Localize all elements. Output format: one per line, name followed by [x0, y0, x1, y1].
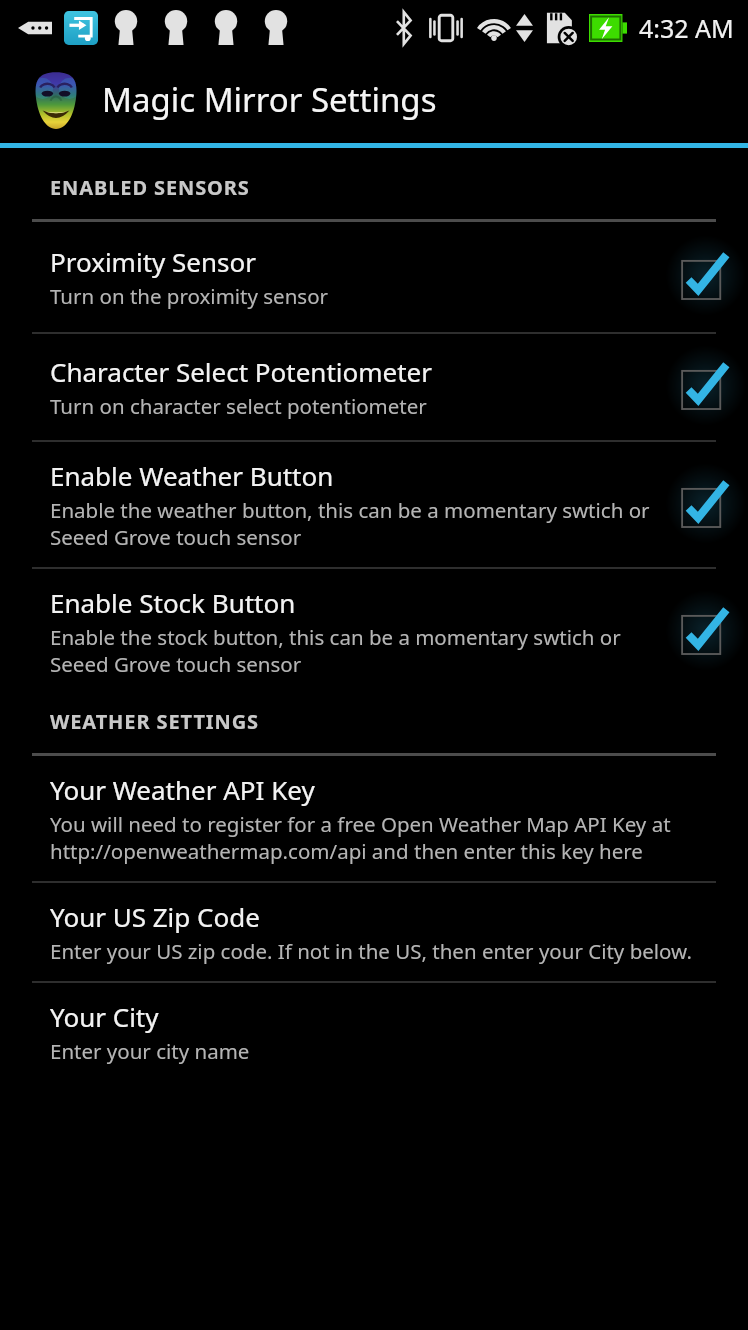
staticText: Your US Zip Code: [50, 899, 260, 934]
staticText: Turn on character select potentiometer: [50, 392, 427, 420]
staticText: Turn on the proximity sensor: [50, 282, 329, 310]
button[interactable]: Enable Stock Button: [0, 569, 748, 692]
staticText: Enable Weather Button: [50, 458, 334, 493]
button[interactable]: Proximity Sensor: [0, 222, 748, 332]
staticText: Your City: [50, 999, 159, 1034]
staticText: Enable Stock Button: [50, 585, 296, 620]
staticText: You will need to register for a free Ope…: [50, 810, 728, 865]
button[interactable]: Enable Weather Button: [0, 442, 748, 567]
staticText: 4:32 AM: [639, 11, 734, 45]
staticText: Your Weather API Key: [50, 772, 315, 807]
staticText: Enable the stock button, this can be a m…: [50, 623, 660, 678]
button[interactable]: Toggle setting: [666, 474, 728, 536]
button[interactable]: Your US Zip Code: [0, 883, 748, 981]
button[interactable]: Your City: [0, 983, 748, 1081]
button[interactable]: Your Weather API Key: [0, 756, 748, 881]
staticText: Character Select Potentiometer: [50, 354, 433, 389]
staticText: WEATHER SETTINGS: [50, 708, 259, 735]
button[interactable]: Toggle setting: [666, 356, 728, 418]
staticText: Proximity Sensor: [50, 244, 256, 279]
staticText: Enter your US zip code. If not in the US…: [50, 937, 692, 965]
staticText: Magic Mirror Settings: [102, 77, 437, 122]
staticText: Enable the weather button, this can be a…: [50, 496, 660, 551]
button[interactable]: Toggle setting: [666, 601, 728, 663]
button[interactable]: Character Select Potentiometer: [0, 334, 748, 440]
staticText: Enter your city name: [50, 1037, 250, 1065]
button[interactable]: Toggle setting: [666, 246, 728, 308]
button[interactable]: Magic Mirror Settings: [0, 56, 748, 143]
staticText: ENABLED SENSORS: [50, 174, 250, 201]
